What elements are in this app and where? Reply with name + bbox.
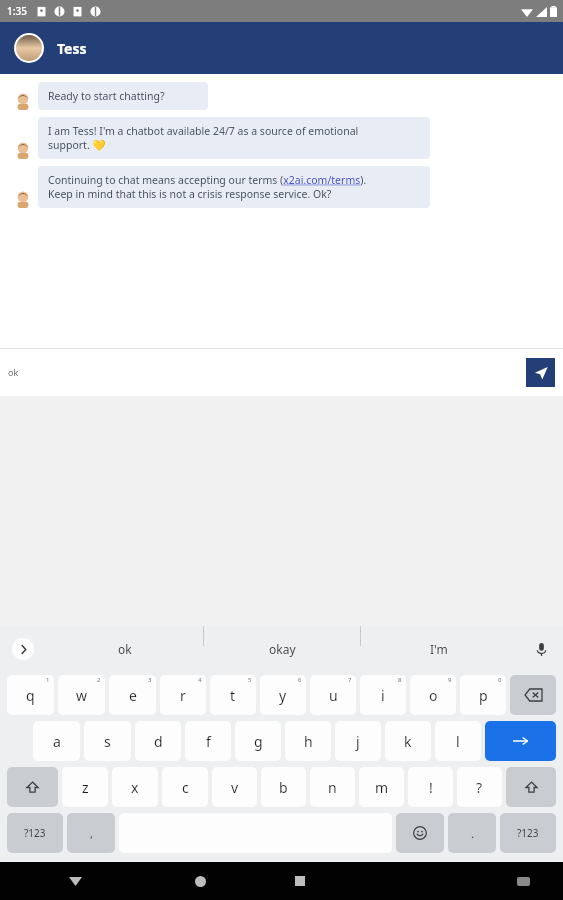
- staticText: ?123: [24, 826, 46, 840]
- button[interactable]: d: [135, 721, 181, 761]
- staticText: f: [206, 732, 211, 751]
- staticText: n: [328, 778, 337, 797]
- staticText: q: [26, 686, 35, 705]
- button[interactable]: y: [260, 675, 306, 715]
- button[interactable]: [485, 721, 556, 761]
- button[interactable]: v: [212, 767, 257, 807]
- button[interactable]: u: [310, 675, 356, 715]
- staticText: 3: [148, 676, 152, 684]
- staticText: o: [429, 686, 438, 705]
- staticText: ?123: [517, 826, 539, 840]
- staticText: s: [104, 732, 111, 751]
- button[interactable]: ?123: [7, 813, 63, 853]
- button[interactable]: Home: [150, 862, 250, 900]
- button[interactable]: Voice input: [531, 639, 551, 659]
- button[interactable]: z: [62, 767, 108, 807]
- staticText: b: [279, 778, 288, 797]
- staticText: Tess: [57, 39, 87, 58]
- staticText: i: [381, 686, 385, 705]
- button[interactable]: l: [435, 721, 481, 761]
- button[interactable]: .: [448, 813, 496, 853]
- staticText: v: [231, 778, 239, 797]
- staticText: !: [429, 778, 433, 797]
- staticText: t: [230, 686, 236, 705]
- staticText: d: [154, 732, 163, 751]
- button[interactable]: Ready to start chatting?: [38, 82, 208, 110]
- button[interactable]: Send: [526, 358, 555, 387]
- button[interactable]: a: [33, 721, 80, 761]
- button[interactable]: More suggestions: [12, 638, 34, 660]
- button[interactable]: p: [460, 675, 506, 715]
- staticText: l: [456, 732, 460, 751]
- staticText: h: [304, 732, 313, 751]
- button[interactable]: ,: [67, 813, 115, 853]
- button[interactable]: n: [310, 767, 355, 807]
- staticText: ?: [476, 778, 483, 797]
- button[interactable]: [7, 767, 58, 807]
- staticText: support. 💛: [48, 138, 106, 152]
- button[interactable]: t: [210, 675, 256, 715]
- button[interactable]: s: [84, 721, 131, 761]
- button[interactable]: Profile photo: [16, 35, 42, 61]
- staticText: k: [404, 732, 412, 751]
- button[interactable]: Recent apps: [250, 862, 350, 900]
- button[interactable]: x: [112, 767, 158, 807]
- staticText: w: [76, 686, 88, 705]
- staticText: g: [254, 732, 263, 751]
- staticText: u: [329, 686, 338, 705]
- button[interactable]: k: [385, 721, 431, 761]
- button[interactable]: f: [185, 721, 231, 761]
- button[interactable]: i: [360, 675, 406, 715]
- staticText: r: [180, 686, 186, 705]
- staticText: j: [356, 732, 360, 751]
- button[interactable]: [510, 675, 556, 715]
- button[interactable]: ?: [457, 767, 502, 807]
- staticText: ,: [90, 826, 93, 841]
- button[interactable]: e: [109, 675, 156, 715]
- button[interactable]: okay: [204, 626, 360, 672]
- button[interactable]: I am Tess! I'm a chatbot available 24/7 …: [38, 117, 430, 159]
- staticText: okay: [269, 641, 296, 657]
- staticText: e: [129, 686, 137, 705]
- staticText: 7: [348, 676, 352, 684]
- staticText: z: [82, 778, 89, 797]
- staticText: a: [53, 732, 61, 751]
- staticText: 4: [198, 676, 202, 684]
- staticText: Keep in mind that this is not a crisis r…: [48, 187, 332, 201]
- button[interactable]: ok: [46, 626, 203, 672]
- button[interactable]: w: [58, 675, 105, 715]
- staticText: 8: [398, 676, 402, 684]
- staticText: Ready to start chatting?: [48, 89, 165, 103]
- button[interactable]: I'm: [361, 626, 517, 672]
- button[interactable]: ?123: [500, 813, 556, 853]
- button[interactable]: m: [359, 767, 404, 807]
- staticText: 5: [248, 676, 252, 684]
- button[interactable]: c: [162, 767, 208, 807]
- staticText: 6: [298, 676, 302, 684]
- button[interactable]: b: [261, 767, 306, 807]
- button[interactable]: j: [335, 721, 381, 761]
- button[interactable]: Hide keyboard: [483, 862, 563, 900]
- button[interactable]: o: [410, 675, 456, 715]
- button[interactable]: h: [285, 721, 331, 761]
- button[interactable]: !: [408, 767, 453, 807]
- staticText: 1: [46, 676, 50, 684]
- staticText: .: [471, 826, 474, 841]
- staticText: ok: [8, 366, 19, 378]
- staticText: 9: [448, 676, 452, 684]
- button[interactable]: Back: [0, 862, 150, 900]
- button[interactable]: [506, 767, 556, 807]
- staticText: I'm: [430, 641, 448, 657]
- staticText: y: [279, 686, 287, 705]
- staticText: p: [479, 686, 488, 705]
- button[interactable]: q: [7, 675, 54, 715]
- staticText: x: [131, 778, 139, 797]
- button[interactable]: r: [160, 675, 206, 715]
- button[interactable]: Continuing to chat means accepting our t…: [38, 166, 430, 208]
- staticText: ok: [118, 641, 132, 657]
- button[interactable]: g: [235, 721, 281, 761]
- staticText: 2: [97, 676, 101, 684]
- button[interactable]: [396, 813, 444, 853]
- staticText: I am Tess! I'm a chatbot available 24/7 …: [48, 124, 359, 138]
